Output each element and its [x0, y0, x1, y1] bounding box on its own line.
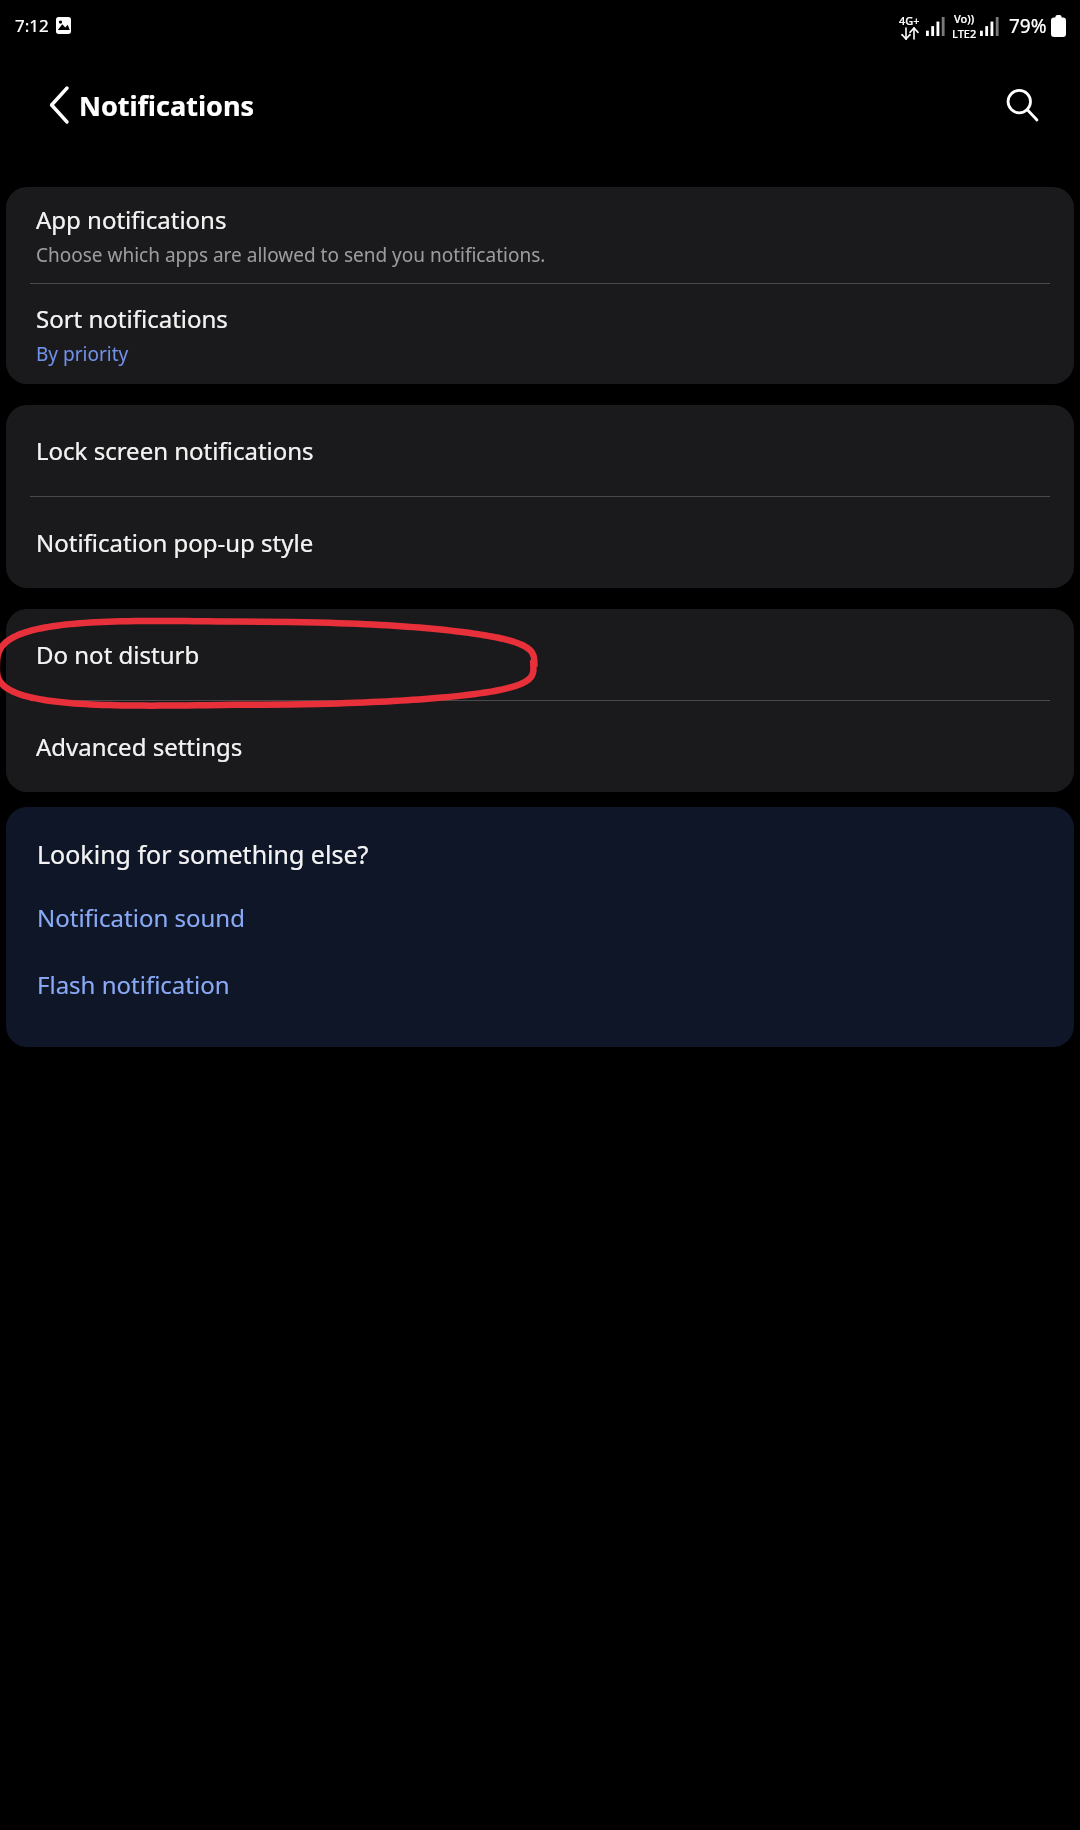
- staticText: Vo)): [954, 11, 975, 26]
- staticText: 4G+: [899, 13, 920, 28]
- staticText: Lock screen notifications: [36, 434, 314, 467]
- staticText: By priority: [36, 341, 129, 367]
- staticText: Looking for something else?: [37, 837, 369, 871]
- staticText: Sort notifications: [36, 302, 228, 335]
- button[interactable]: Search: [992, 75, 1052, 135]
- staticText: Advanced settings: [36, 730, 243, 763]
- staticText: Do not disturb: [36, 638, 200, 671]
- button[interactable]: Notification pop-up style: [6, 497, 1074, 588]
- staticText: LTE2: [952, 26, 977, 41]
- button[interactable]: Advanced settings: [6, 701, 1074, 792]
- button[interactable]: Do not disturb: [6, 609, 1074, 700]
- staticText: Choose which apps are allowed to send yo…: [36, 242, 546, 268]
- staticText: 7:12: [15, 14, 49, 37]
- staticText: Notification sound: [37, 901, 245, 934]
- button[interactable]: Sort notifications: [6, 284, 1074, 384]
- staticText: Notification pop-up style: [36, 526, 314, 559]
- button[interactable]: App notifications: [6, 187, 1074, 283]
- staticText: Flash notification: [37, 968, 230, 1001]
- staticText: 79%: [1009, 13, 1047, 39]
- staticText: Notifications: [79, 87, 254, 124]
- button[interactable]: Lock screen notifications: [6, 405, 1074, 496]
- button[interactable]: Back: [34, 79, 86, 131]
- staticText: App notifications: [36, 203, 227, 236]
- button[interactable]: Notification sound: [6, 895, 1074, 940]
- button[interactable]: Flash notification: [6, 962, 1074, 1007]
